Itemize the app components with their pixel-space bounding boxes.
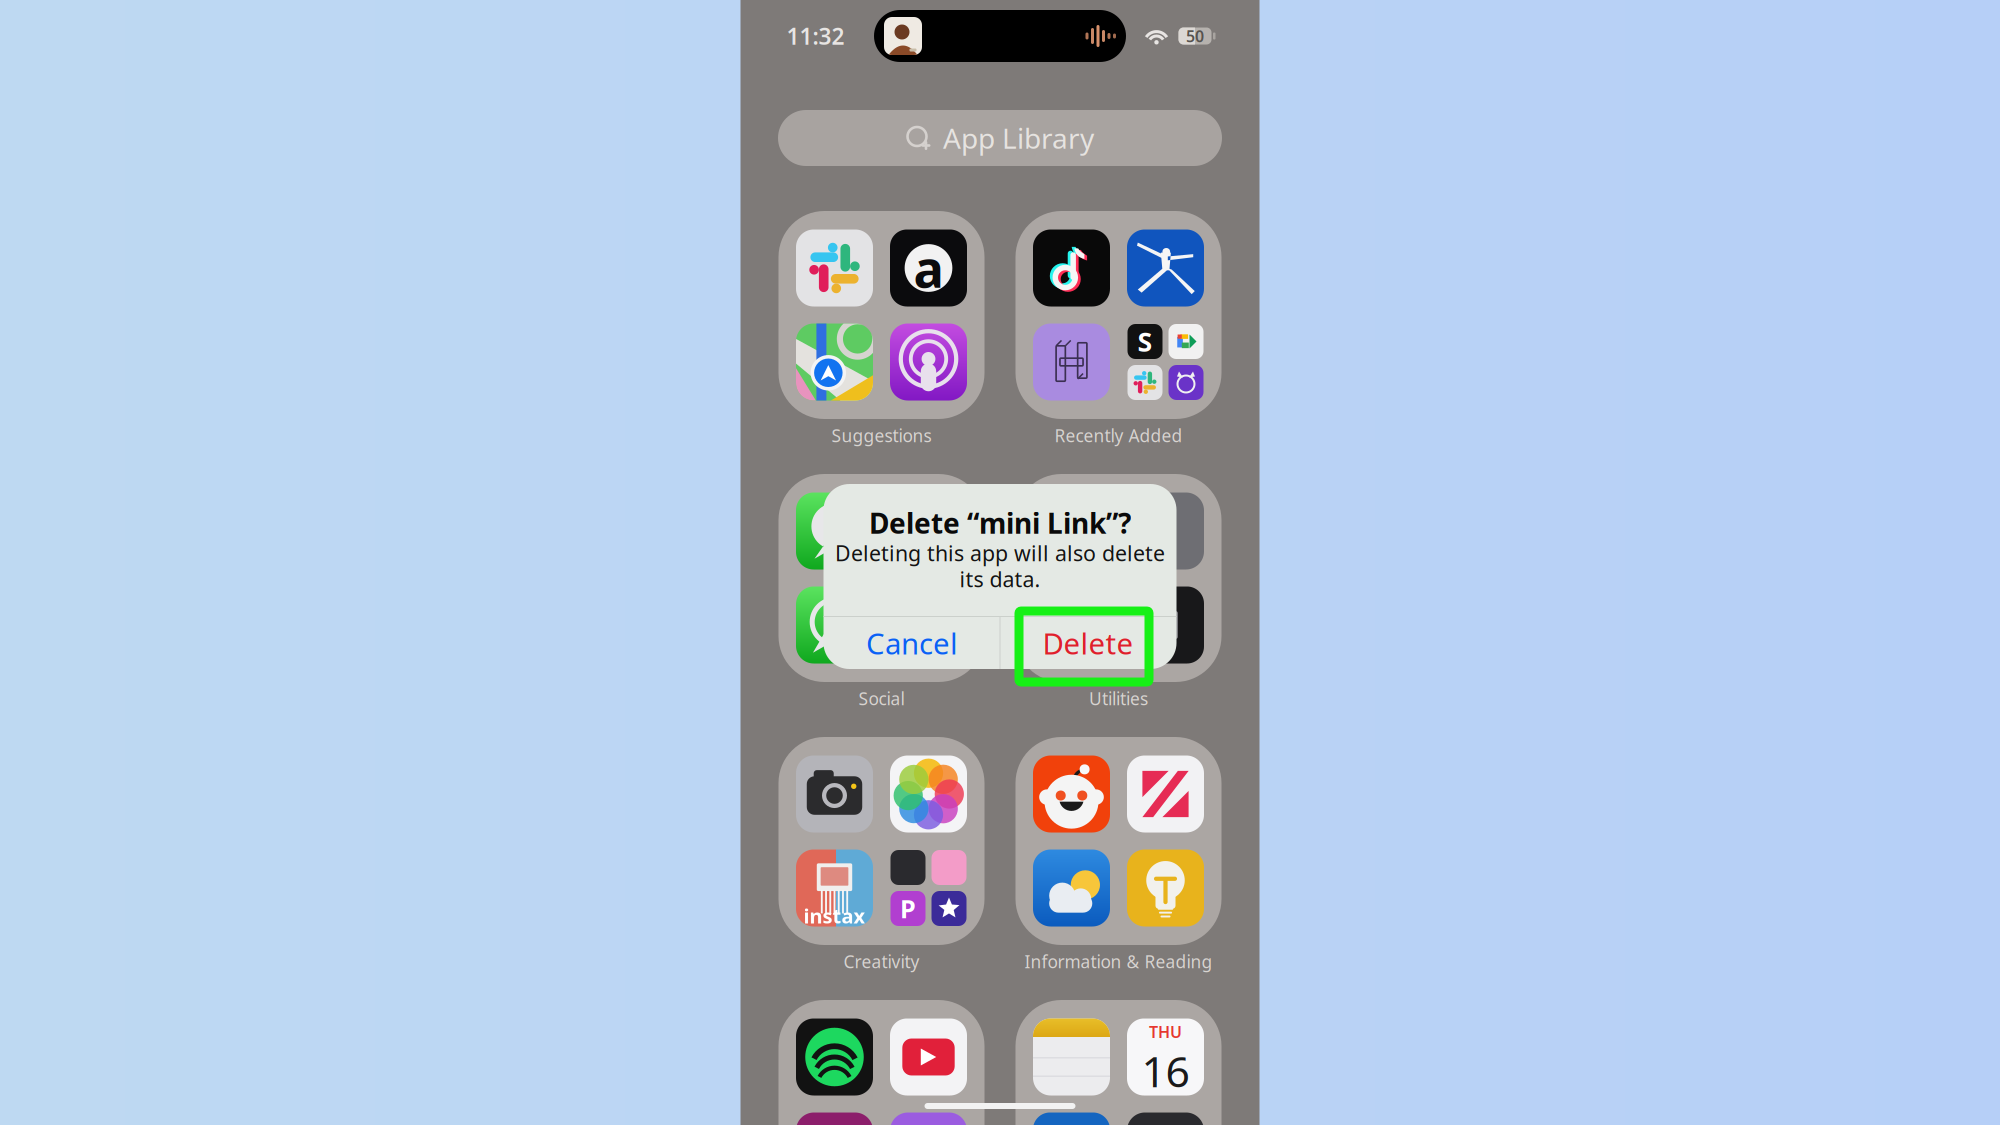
staticText: Suggestions [831,424,931,447]
button[interactable]: Utilities [1015,474,1221,737]
button[interactable]: Social [778,474,984,737]
button[interactable]: Information & Reading [1015,737,1221,1000]
staticText: 16 [1141,1042,1189,1099]
staticText: Cancel [866,623,958,662]
staticText: Delete “mini Link”? [869,504,1131,542]
staticText: Delete [1042,623,1133,662]
staticText: Utilities [1089,687,1148,710]
staticText: a [913,234,943,302]
button[interactable]: instax [778,737,984,1000]
staticText: Recently Added [1054,424,1182,447]
button[interactable]: THU [1015,1000,1221,1125]
staticText: its data. [959,565,1040,593]
staticText: Information & Reading [1024,950,1212,973]
button[interactable]: a [778,211,984,474]
staticText: Creativity [843,950,919,973]
button[interactable]: Delete [1000,617,1176,669]
button[interactable]: S [1015,211,1221,474]
staticText: App Library [943,119,1094,157]
button[interactable]: App Library [778,110,1222,166]
staticText: Deleting this app will also delete [835,539,1165,567]
staticText: S [1137,324,1152,359]
button[interactable]: Cancel [824,617,1000,669]
staticText: THU [1149,1021,1182,1042]
button[interactable] [778,1000,984,1125]
staticText: 11:32 [786,21,844,51]
staticText: Social [858,687,904,710]
staticText: 50 [1186,25,1204,47]
staticText: P [900,892,916,925]
staticText: instax [803,902,865,929]
